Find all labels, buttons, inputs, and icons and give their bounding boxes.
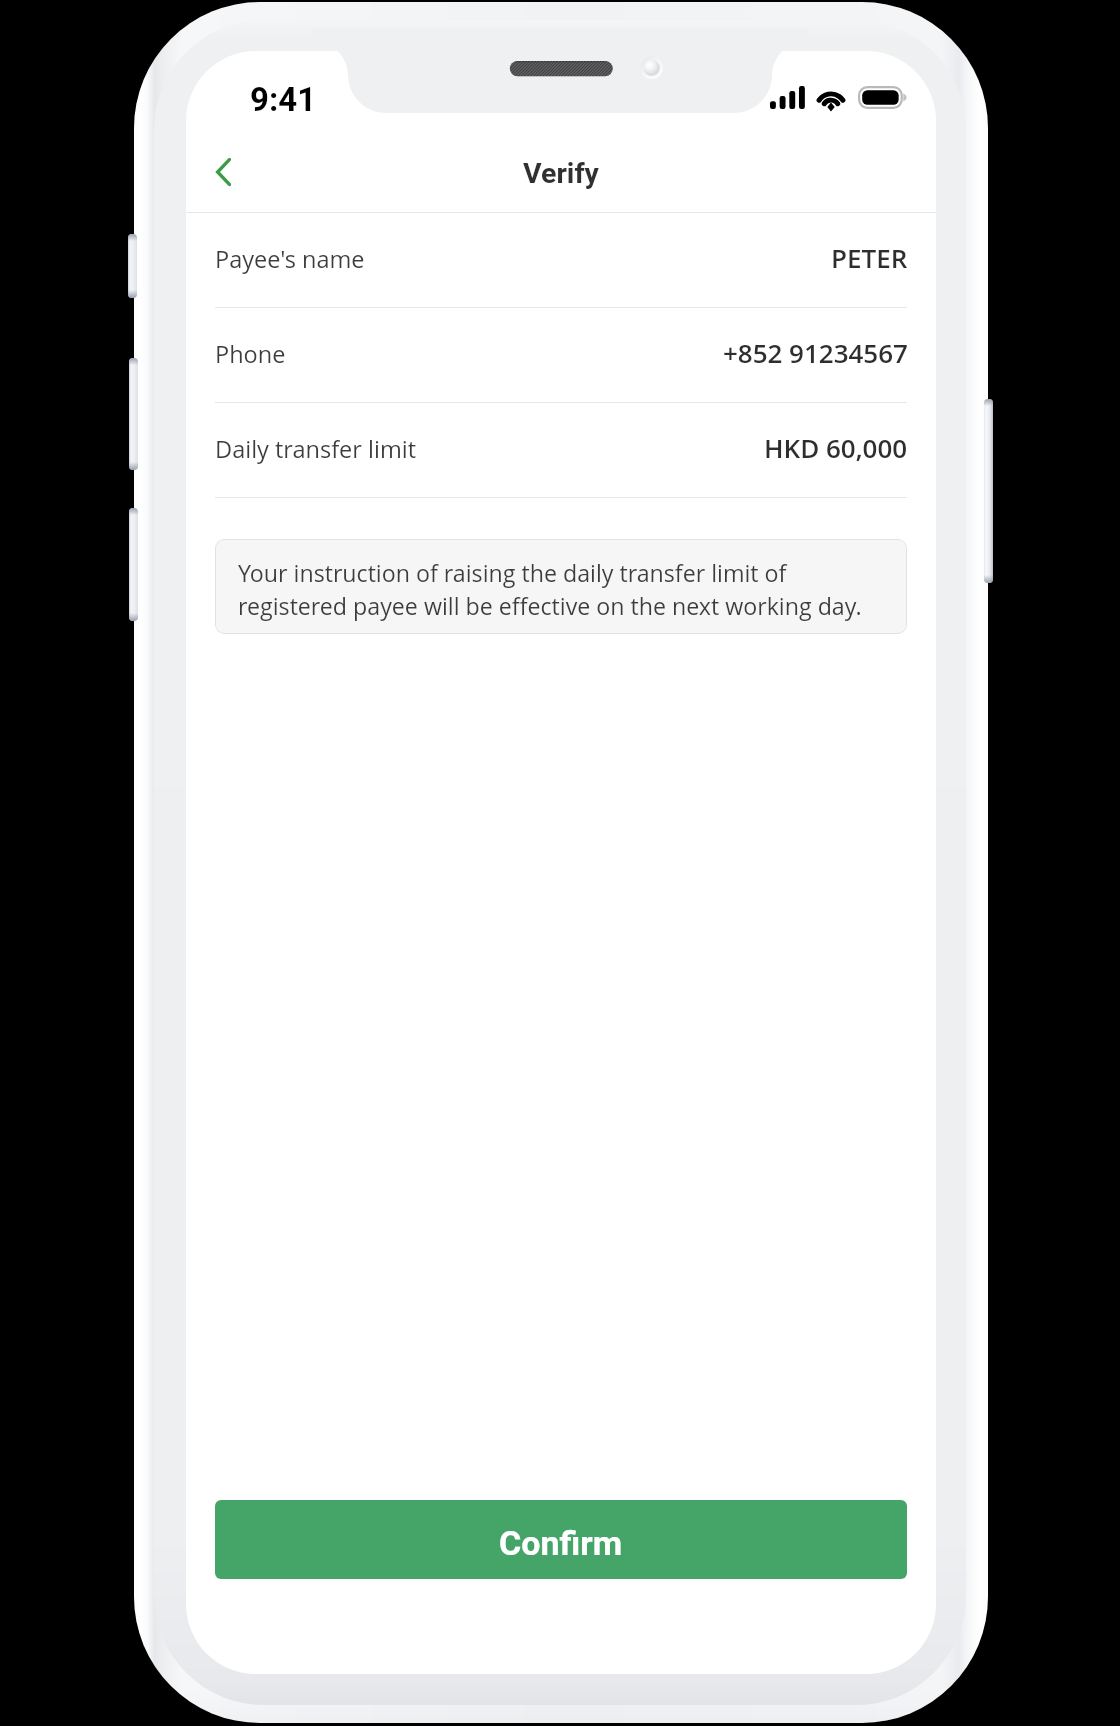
staticText: Your instruction of raising the daily tr…	[238, 557, 887, 622]
button[interactable]: Confirm	[215, 1500, 907, 1579]
staticText: +852 91234567	[723, 335, 908, 370]
staticText: Payee's name	[215, 243, 365, 275]
staticText: Confirm	[499, 1523, 623, 1563]
staticText: PETER	[831, 240, 908, 275]
staticText: Verify	[523, 157, 599, 190]
staticText: HKD 60,000	[764, 430, 908, 465]
staticText: Phone	[215, 338, 286, 370]
staticText: Daily transfer limit	[215, 433, 416, 465]
button[interactable]: Back	[192, 141, 254, 203]
staticText: 9:41	[250, 80, 317, 119]
